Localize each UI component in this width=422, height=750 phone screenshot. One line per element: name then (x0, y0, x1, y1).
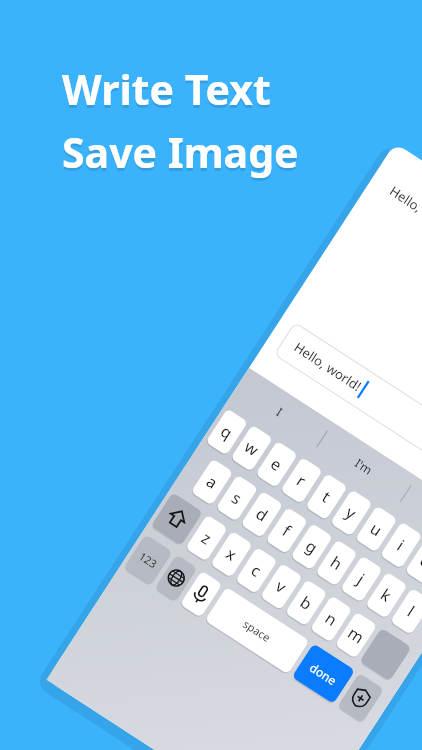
button[interactable]: Write Text Save Image app preview (0, 0, 422, 750)
